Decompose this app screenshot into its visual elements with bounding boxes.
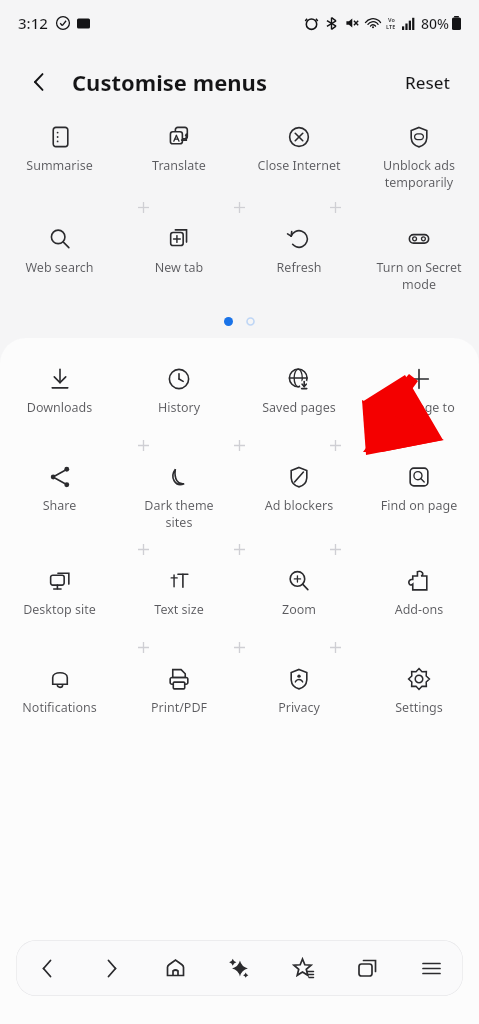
staticText: Settings xyxy=(361,699,477,716)
staticText: New tab xyxy=(121,259,237,276)
button[interactable]: Add page to xyxy=(359,360,479,416)
button[interactable]: History xyxy=(119,360,239,416)
button[interactable]: Menu xyxy=(399,940,463,996)
staticText: Close Internet xyxy=(241,157,357,174)
button[interactable]: Notifications xyxy=(0,660,119,716)
staticText: History xyxy=(121,399,237,416)
button[interactable]: Back xyxy=(16,940,79,996)
button[interactable]: AI assistant xyxy=(207,940,271,996)
button[interactable]: Settings xyxy=(359,660,479,716)
staticText: Customise menus xyxy=(72,67,267,97)
staticText: 3:12 xyxy=(18,13,48,33)
button[interactable]: Summarise xyxy=(0,118,119,174)
staticText: Translate xyxy=(121,157,237,174)
staticText: Share xyxy=(2,497,117,514)
button[interactable]: Desktop site xyxy=(0,562,119,618)
button[interactable]: Dark theme sites xyxy=(119,458,239,530)
staticText: Summarise xyxy=(2,157,117,174)
staticText: Vo xyxy=(388,16,395,23)
button[interactable]: Web search xyxy=(0,220,119,276)
staticText: Desktop site xyxy=(2,601,117,618)
button[interactable]: Translate xyxy=(119,118,239,174)
button[interactable]: Refresh xyxy=(239,220,359,276)
button[interactable]: Privacy xyxy=(239,660,359,716)
staticText: Privacy xyxy=(241,699,357,716)
button[interactable]: Share xyxy=(0,458,119,514)
button[interactable]: Close Internet xyxy=(239,118,359,174)
button[interactable]: Home xyxy=(143,940,207,996)
button[interactable]: Turn on Secret mode xyxy=(359,220,479,292)
button[interactable]: Add-ons xyxy=(359,562,479,618)
staticText: LTE xyxy=(386,23,396,30)
staticText: 80% xyxy=(421,14,449,33)
button[interactable]: Zoom xyxy=(239,562,359,618)
button[interactable]: Print/PDF xyxy=(119,660,239,716)
staticText: Downloads xyxy=(2,399,117,416)
button[interactable]: Unblock ads temporarily xyxy=(359,118,479,190)
staticText: Web search xyxy=(2,259,117,276)
button[interactable]: Tabs xyxy=(335,940,399,996)
button[interactable]: New tab xyxy=(119,220,239,276)
button[interactable]: Text size xyxy=(119,562,239,618)
staticText: Dark theme sites xyxy=(121,497,237,530)
staticText: Refresh xyxy=(241,259,357,276)
button[interactable]: Reset xyxy=(399,65,457,100)
staticText: Text size xyxy=(121,601,237,618)
staticText: Add-ons xyxy=(361,601,477,618)
staticText: Unblock ads temporarily xyxy=(361,157,477,190)
staticText: Reset xyxy=(405,71,451,94)
button[interactable]: Downloads xyxy=(0,360,119,416)
staticText: Zoom xyxy=(241,601,357,618)
staticText: Saved pages xyxy=(241,399,357,416)
staticText: Ad blockers xyxy=(241,497,357,514)
button[interactable]: Ad blockers xyxy=(239,458,359,514)
staticText: Turn on Secret mode xyxy=(361,259,477,292)
button[interactable]: Find on page xyxy=(359,458,479,514)
staticText: Add page to xyxy=(361,399,477,416)
button[interactable]: Back xyxy=(22,65,56,99)
staticText: Find on page xyxy=(361,497,477,514)
button[interactable]: Forward xyxy=(79,940,143,996)
staticText: Notifications xyxy=(2,699,117,716)
button[interactable]: Saved pages xyxy=(239,360,359,416)
button[interactable]: Bookmarks xyxy=(271,940,335,996)
staticText: Print/PDF xyxy=(121,699,237,716)
